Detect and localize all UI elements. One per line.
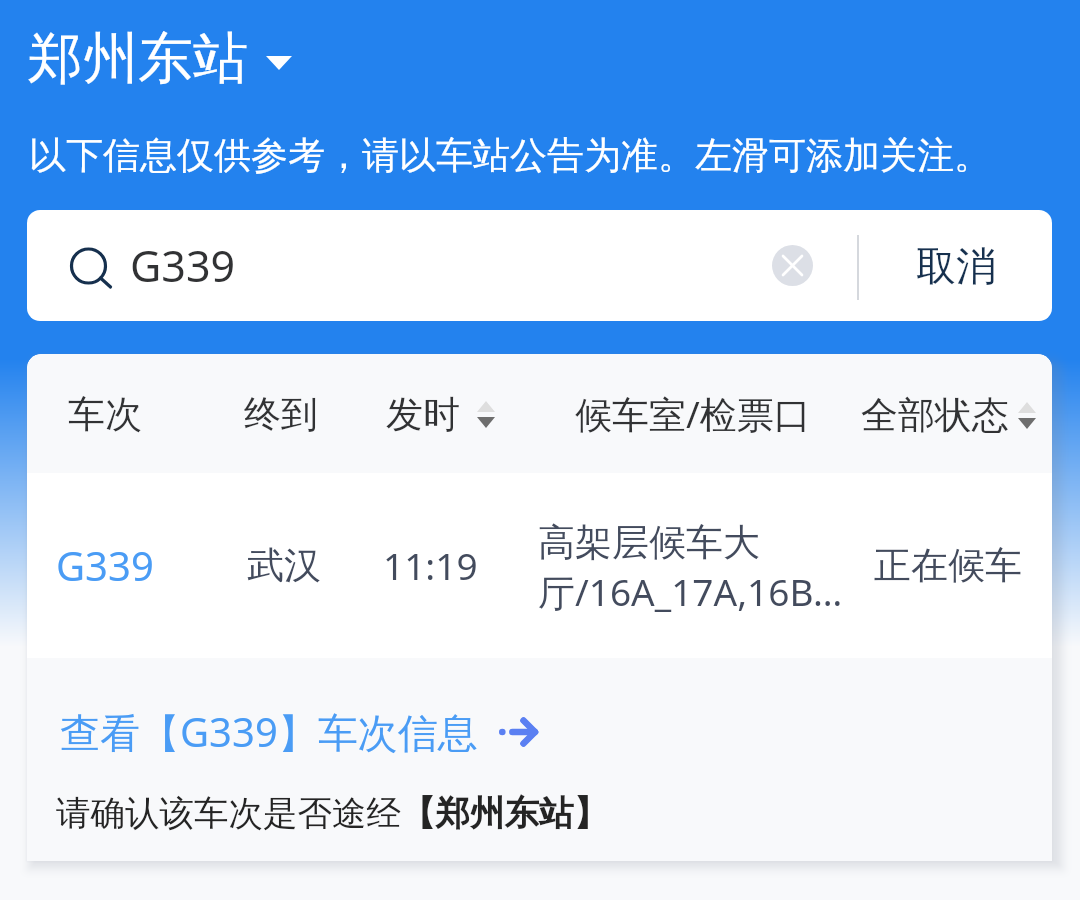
staticText: 郑州东站 bbox=[28, 24, 248, 93]
staticText: 全部状态 bbox=[861, 392, 1009, 439]
staticText: G339 bbox=[130, 236, 236, 295]
staticText: 武汉 bbox=[247, 542, 321, 589]
button[interactable]: Search train number bbox=[27, 210, 847, 321]
staticText: 车次 bbox=[68, 391, 142, 438]
staticText: 以下信息仅供参考，请以车站公告为准。左滑可添加关注。 bbox=[29, 132, 991, 179]
button[interactable]: 查看【G339】车次信息 bbox=[54, 700, 547, 763]
button[interactable]: Clear search bbox=[772, 245, 813, 286]
button[interactable]: G339 bbox=[27, 473, 1052, 658]
button[interactable]: 发时 bbox=[386, 384, 495, 445]
staticText: 请确认该车次是否途经【郑州东站】 bbox=[56, 792, 608, 835]
staticText: 发时 bbox=[386, 391, 460, 438]
staticText: 取消 bbox=[916, 241, 996, 291]
staticText: 11:19 bbox=[383, 540, 478, 590]
button[interactable]: 取消 bbox=[896, 210, 1016, 321]
staticText: 高架层候车大 bbox=[538, 519, 760, 566]
button[interactable]: 郑州东站 bbox=[22, 18, 300, 99]
staticText: 正在候车 bbox=[874, 542, 1022, 589]
button[interactable]: 全部状态 bbox=[861, 385, 1036, 446]
staticText: 厅/16A_17A,16B… bbox=[538, 566, 843, 617]
staticText: 查看【G339】车次信息 bbox=[60, 704, 478, 759]
staticText: G339 bbox=[56, 538, 154, 592]
staticText: 终到 bbox=[244, 391, 318, 438]
staticText: 候车室/检票口 bbox=[575, 388, 811, 439]
